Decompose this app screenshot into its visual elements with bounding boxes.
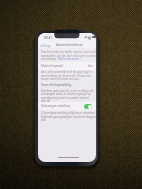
staticText: Kies hieronder op welke manier u zich wi…: [41, 50, 96, 54]
staticText: een melding op dit toestel. U kunt ook: [41, 74, 91, 78]
button[interactable]: Terug: [39, 43, 52, 49]
staticText: Dit heeft geen gevolgen voor het inlogge…: [41, 115, 96, 119]
staticText: ontvangen zodra er wordt ingelogd op: [41, 92, 92, 96]
button[interactable]: Ontvangen melding aan: [84, 104, 92, 109]
staticText: Aanmeldmethode: [56, 43, 84, 47]
staticText: Aan: [88, 64, 94, 68]
button[interactable]: Ontvangen melding: [38, 102, 96, 110]
staticText: 09:41: [44, 36, 52, 40]
staticText: beschikbaar.: [41, 57, 58, 61]
staticText: Als u zich aanmeldt met de app krijgt u: [41, 70, 92, 74]
staticText: Terug: [42, 44, 51, 48]
staticText: Meer informatie: [58, 57, 80, 61]
button[interactable]: Meer informatie: [58, 57, 80, 61]
staticText: Zet deze optie aan als u een melding wil…: [41, 89, 94, 93]
staticText: Ontvangen melding: [41, 104, 70, 108]
staticText: aanmelden. Let op: niet elke optie is ov…: [41, 54, 96, 58]
staticText: kiezen voor een code via sms.: [41, 77, 80, 81]
button[interactable]: Mobiel bepaald: [38, 62, 96, 70]
staticText: dan dit.: [41, 99, 51, 103]
staticText: U kunt deze melding altijd weer uitzette…: [41, 111, 96, 115]
staticText: uw rekening vanaf een ander toestel: [41, 96, 89, 100]
staticText: Toon of inlogmelding: [41, 83, 72, 87]
staticText: zelf.: [41, 118, 47, 122]
staticText: Mobiel bepaald: [41, 64, 64, 68]
